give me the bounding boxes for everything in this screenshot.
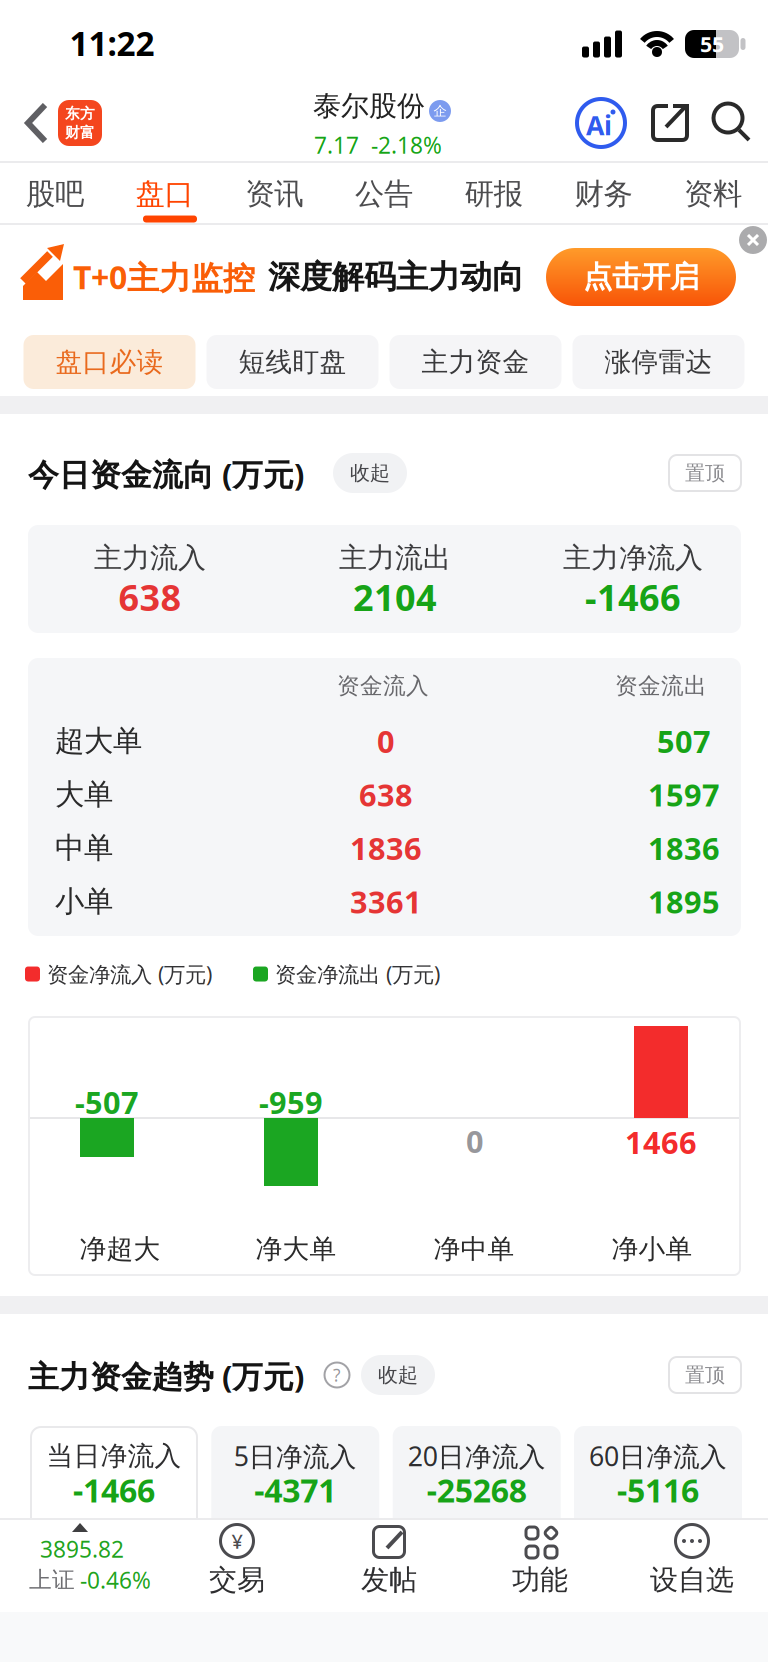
button[interactable]: 设自选 [648,1519,736,1611]
staticText: 设自选 [650,1563,734,1597]
staticText: 2104 [353,573,437,621]
staticText: 置顶 [685,461,725,485]
button[interactable]: Close [739,226,767,254]
button[interactable]: Help [323,1361,350,1388]
staticText: -4371 [254,1469,336,1511]
button[interactable]: 收起 [361,1355,435,1395]
staticText: 泰尔股份 [313,89,425,123]
staticText: 20日净流入 [408,1438,546,1474]
staticText: -507 [75,1082,139,1122]
staticText: -0.46% [80,1565,151,1595]
staticText: 资料 [684,176,742,212]
button[interactable]: 60日净流入 [574,1426,742,1531]
staticText: 3895.82 [40,1534,124,1564]
staticText: 主力流入 [94,541,206,575]
staticText: T+0主力监控 [73,256,255,298]
staticText: 净超大 [79,1233,160,1265]
button[interactable]: 东方财富 [58,100,102,146]
button[interactable]: 资讯 [219,163,329,225]
staticText: 东方 [65,104,95,122]
staticText: 点击开启 [583,259,699,295]
button[interactable]: 置顶 [668,454,742,492]
staticText: 主力净流入 [563,541,703,575]
staticText: 当日净流入 [46,1440,181,1472]
staticText: 资金流入 [337,672,429,700]
button[interactable]: 盘口 [110,163,219,225]
staticText: 财务 [574,176,632,212]
staticText: -25268 [427,1469,527,1511]
staticText: 功能 [512,1563,568,1597]
button[interactable]: 主力资金 [389,335,561,389]
button[interactable]: 当日净流入 [30,1426,198,1531]
staticText: 盘口 [136,176,194,212]
staticText: 置顶 [685,1363,725,1387]
button[interactable]: 资料 [658,163,768,225]
staticText: 今日资金流向 (万元) [28,454,304,494]
staticText: -959 [259,1082,323,1122]
staticText: 资金净流入 (万元) [47,960,212,988]
staticText: 盘口必读 [55,346,163,378]
staticText: ? [333,1363,341,1386]
button[interactable]: 股吧 [0,163,110,225]
button[interactable]: 财务 [548,163,658,225]
staticText: 收起 [350,461,390,485]
button[interactable]: ¥ [197,1519,277,1611]
staticText: 1895 [648,881,720,922]
button[interactable]: 涨停雷达 [572,335,744,389]
staticText: ¥ [231,1528,242,1554]
staticText: 涨停雷达 [604,346,712,378]
button[interactable]: AI [575,97,627,149]
button[interactable]: Back [19,101,55,145]
staticText: -1466 [73,1469,155,1511]
button[interactable]: 研报 [439,163,548,225]
staticText: 主力流出 [339,541,451,575]
button[interactable]: Share [651,104,689,142]
staticText: 短线盯盘 [238,346,346,378]
staticText: 1836 [350,828,422,868]
staticText: 638 [118,573,181,621]
staticText: 638 [359,774,413,815]
button[interactable]: 公告 [329,163,439,225]
button[interactable]: 20日净流入 [393,1426,561,1531]
staticText: Ai [586,107,612,143]
staticText: 超大单 [55,723,142,759]
staticText: 60日净流入 [589,1438,727,1474]
staticText: 净中单 [433,1233,514,1265]
staticText: 上证 [29,1566,75,1594]
staticText: 主力资金趋势 (万元) [28,1356,304,1396]
staticText: 公告 [355,176,413,212]
button[interactable]: 发帖 [349,1519,429,1611]
staticText: 财富 [65,123,95,141]
button[interactable]: 置顶 [668,1356,742,1394]
staticText: 股吧 [26,176,84,212]
button[interactable]: 5日净流入 [211,1426,379,1531]
staticText: 0 [377,721,395,761]
button[interactable]: 3895.82 [0,1519,164,1611]
staticText: 收起 [378,1363,418,1387]
staticText: 企 [433,103,446,119]
staticText: 净小单 [611,1233,692,1265]
staticText: 1466 [625,1122,697,1162]
button[interactable]: 收起 [333,453,407,493]
staticText: 资金流出 [615,672,707,700]
staticText: 1836 [648,828,720,868]
staticText: 深度解码主力动向 [268,257,524,297]
staticText: 3361 [350,881,422,922]
staticText: 资讯 [245,176,303,212]
staticText: 0 [466,1121,484,1161]
staticText: -1466 [585,573,681,621]
staticText: 交易 [209,1563,265,1597]
staticText: 研报 [465,176,523,212]
button[interactable]: 短线盯盘 [206,335,378,389]
staticText: 5日净流入 [234,1438,357,1474]
button[interactable]: Search [711,102,751,142]
staticText: -5116 [617,1469,699,1511]
staticText: 中单 [55,830,113,866]
staticText: 507 [657,721,711,761]
button[interactable]: 点击开启 [546,248,736,306]
staticText: 发帖 [361,1563,417,1597]
staticText: 7.17 -2.18% [314,130,442,160]
button[interactable]: 盘口必读 [23,335,195,389]
staticText: 11:22 [69,21,154,65]
button[interactable]: 功能 [500,1519,580,1611]
